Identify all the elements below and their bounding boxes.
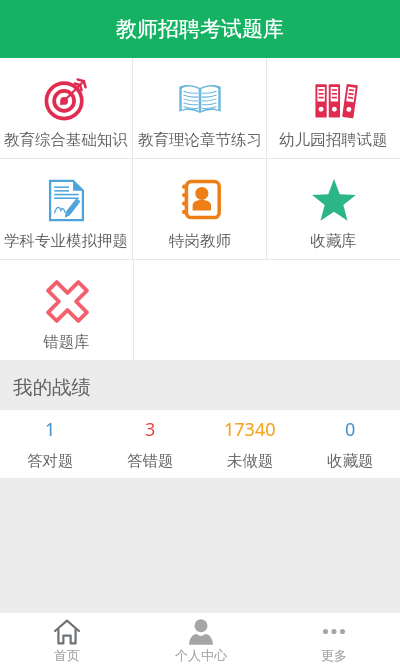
- button[interactable]: 1: [0, 410, 100, 478]
- staticText: 收藏库: [310, 231, 357, 251]
- button[interactable]: 特岗教师: [133, 159, 266, 259]
- staticText: 教育理论章节练习: [138, 130, 262, 150]
- staticText: 收藏题: [327, 451, 374, 471]
- button[interactable]: 收藏库: [267, 159, 400, 259]
- staticText: 未做题: [227, 451, 274, 471]
- staticText: 特岗教师: [169, 231, 231, 251]
- staticText: 个人中心: [175, 647, 227, 663]
- staticText: 学科专业模拟押题: [4, 231, 128, 251]
- button[interactable]: 学科专业模拟押题: [0, 159, 132, 259]
- staticText: 我的战绩: [13, 375, 91, 400]
- other: 更多: [321, 619, 347, 645]
- button[interactable]: 3: [100, 410, 200, 478]
- staticText: 首页: [54, 647, 80, 663]
- staticText: 教师招聘考试题库: [116, 16, 284, 42]
- button[interactable]: 教育理论章节练习: [133, 58, 266, 158]
- button[interactable]: 教育综合基础知识: [0, 58, 132, 158]
- staticText: 0: [345, 417, 356, 442]
- other: 首页: [54, 619, 80, 645]
- staticText: 答对题: [27, 451, 74, 471]
- staticText: 17340: [224, 417, 276, 442]
- other: 个人中心: [188, 619, 214, 645]
- button[interactable]: 错题库: [0, 260, 133, 360]
- staticText: 幼儿园招聘试题: [279, 130, 388, 150]
- button[interactable]: 0: [300, 410, 400, 478]
- button[interactable]: 个人中心: [134, 613, 267, 666]
- button[interactable]: 首页: [0, 613, 134, 666]
- staticText: 错题库: [43, 332, 90, 352]
- button[interactable]: 17340: [200, 410, 300, 478]
- button[interactable]: 更多: [267, 613, 400, 666]
- staticText: 1: [45, 417, 56, 442]
- staticText: 3: [145, 417, 156, 442]
- staticText: 答错题: [127, 451, 174, 471]
- staticText: 更多: [321, 647, 347, 663]
- staticText: 教育综合基础知识: [4, 130, 128, 150]
- button[interactable]: 幼儿园招聘试题: [267, 58, 400, 158]
